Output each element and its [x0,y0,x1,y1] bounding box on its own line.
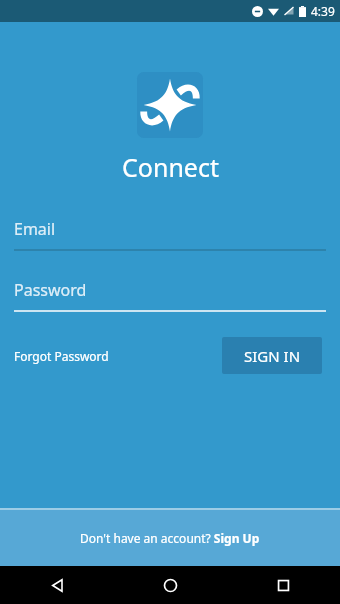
button[interactable]: Email [14,218,326,251]
button[interactable]: Recent apps [227,566,340,604]
staticText: Don't have an account? Sign Up [80,530,260,546]
staticText: SIGN IN [244,346,301,366]
staticText: 4:39 [311,3,335,19]
staticText: Email [14,218,56,240]
staticText: Password [14,279,87,301]
button[interactable]: Don't have an account? Sign Up [0,510,340,566]
button[interactable]: Home [114,566,227,604]
staticText: Connect [122,150,219,184]
button[interactable]: Password [14,279,326,312]
button[interactable]: SIGN IN [222,337,322,374]
staticText: Forgot Password [14,348,109,364]
button[interactable]: Forgot Password [14,342,109,370]
button[interactable]: Back [0,566,114,604]
